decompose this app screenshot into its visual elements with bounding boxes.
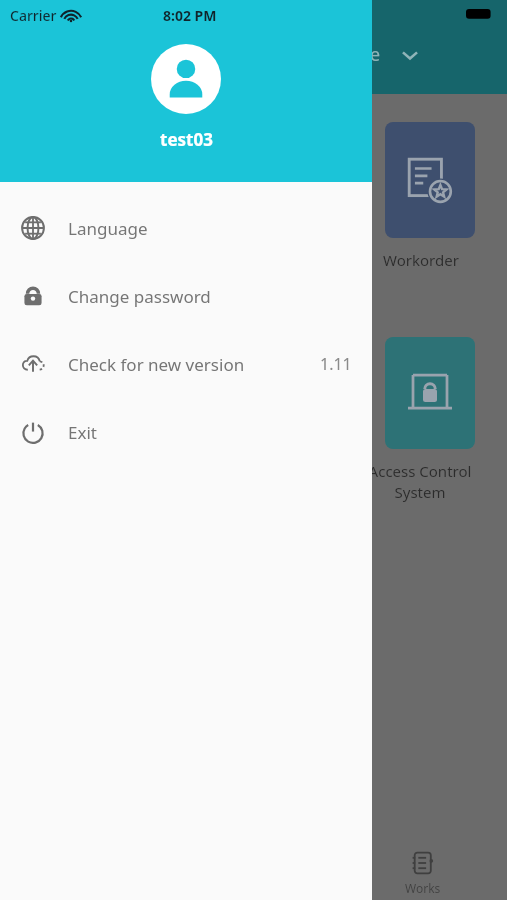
button[interactable]: Profile photo [151, 44, 221, 114]
button[interactable] [385, 122, 475, 238]
staticText: Carrier [10, 6, 57, 25]
button[interactable] [385, 337, 475, 449]
staticText: test03 [160, 128, 213, 151]
staticText: Change password [68, 285, 211, 308]
staticText: Works [405, 880, 441, 896]
staticText: Workorder [367, 250, 475, 270]
staticText: Check for new version [68, 353, 245, 376]
button[interactable]: Change password [0, 262, 372, 330]
button[interactable]: Check for new version [0, 330, 372, 398]
button[interactable]: Language [0, 194, 372, 262]
button[interactable]: Works [396, 850, 450, 896]
staticText: Exit [68, 421, 97, 444]
staticText: Language [68, 217, 148, 240]
button[interactable]: Exit [0, 398, 372, 466]
staticText: FM Office [300, 42, 381, 67]
staticText: Access Control System [357, 461, 483, 503]
staticText: 1.11 [320, 353, 352, 375]
button[interactable]: Select site [399, 44, 421, 66]
staticText: 8:02 PM [163, 6, 217, 25]
